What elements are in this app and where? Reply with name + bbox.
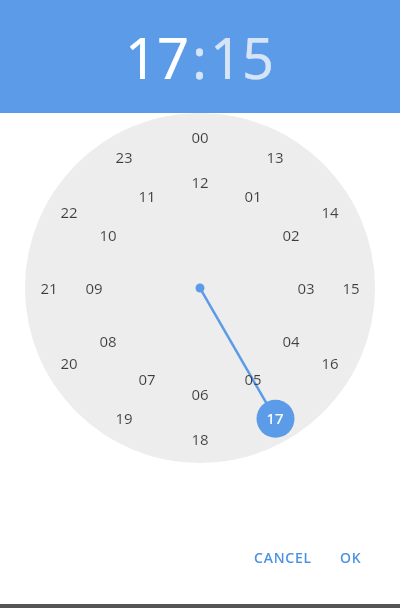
button[interactable]: 13	[266, 147, 284, 167]
button[interactable]: 01	[244, 186, 262, 206]
staticText: 05	[244, 369, 262, 389]
staticText: 12	[191, 172, 209, 192]
staticText: 15	[342, 278, 360, 298]
button[interactable]: 11	[138, 186, 156, 206]
button[interactable]: OK	[326, 538, 376, 577]
button[interactable]: 10	[99, 225, 117, 245]
button[interactable]: 19	[115, 408, 133, 428]
button[interactable]: 00	[191, 127, 209, 147]
button[interactable]: 03	[297, 278, 315, 298]
staticText: 22	[60, 202, 78, 222]
staticText: 00	[191, 127, 209, 147]
button[interactable]: 14	[321, 202, 339, 222]
staticText: 08	[99, 331, 117, 351]
staticText: OK	[340, 548, 362, 567]
button[interactable]: 12	[191, 172, 209, 192]
staticText: 06	[191, 384, 209, 404]
staticText: 16	[321, 353, 339, 373]
button[interactable]: 06	[191, 384, 209, 404]
button[interactable]: 23	[115, 147, 133, 167]
staticText: 18	[191, 429, 209, 449]
staticText: 15	[210, 19, 275, 95]
button[interactable]: 17	[266, 408, 284, 428]
button[interactable]: 16	[321, 353, 339, 373]
staticText: 09	[85, 278, 103, 298]
staticText: 17	[125, 19, 190, 95]
staticText: CANCEL	[254, 548, 312, 567]
staticText: 10	[99, 225, 117, 245]
staticText: 07	[138, 369, 156, 389]
staticText: 23	[115, 147, 133, 167]
button[interactable]: 15	[208, 19, 277, 95]
staticText: 17	[266, 408, 284, 428]
button[interactable]: 20	[60, 353, 78, 373]
button[interactable]: CANCEL	[240, 538, 326, 577]
staticText: 14	[321, 202, 339, 222]
button[interactable]: 09	[85, 278, 103, 298]
button[interactable]: 15	[342, 278, 360, 298]
button[interactable]: 08	[99, 331, 117, 351]
staticText: 04	[282, 331, 300, 351]
staticText: 20	[60, 353, 78, 373]
staticText: 01	[244, 186, 262, 206]
staticText: 02	[282, 225, 300, 245]
button[interactable]: 22	[60, 202, 78, 222]
button[interactable]: 04	[282, 331, 300, 351]
button[interactable]: 17	[123, 19, 192, 95]
button[interactable]: 18	[191, 429, 209, 449]
staticText: :	[192, 19, 208, 95]
button[interactable]: 21	[40, 278, 58, 298]
button[interactable]: 05	[244, 369, 262, 389]
staticText: 19	[115, 408, 133, 428]
staticText: 11	[138, 186, 156, 206]
staticText: 13	[266, 147, 284, 167]
staticText: 21	[40, 278, 58, 298]
button[interactable]: 07	[138, 369, 156, 389]
button[interactable]: 02	[282, 225, 300, 245]
staticText: 03	[297, 278, 315, 298]
